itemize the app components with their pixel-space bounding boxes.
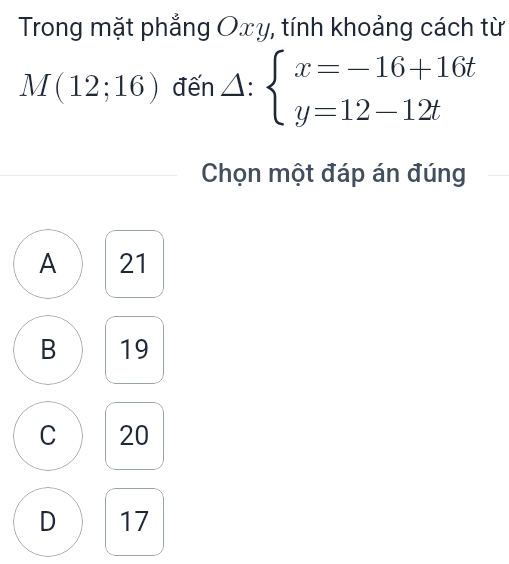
staticText: ;: [102, 70, 111, 102]
staticText: 20: [119, 420, 150, 452]
staticText: 16: [113, 70, 146, 102]
button[interactable]: Đáp án D: 17: [13, 487, 164, 557]
staticText: D: [39, 506, 57, 538]
staticText: 𝑂𝑥𝑦: [216, 12, 270, 42]
staticText: 17: [119, 506, 150, 538]
button[interactable]: 20: [105, 402, 164, 470]
button[interactable]: Đáp án A: 21: [13, 229, 164, 299]
button[interactable]: Đáp án C: 20: [13, 401, 164, 471]
staticText: =: [313, 94, 338, 126]
staticText: 21: [119, 248, 150, 280]
staticText: +: [408, 51, 433, 83]
staticText: 12: [68, 70, 101, 102]
staticText: , tính khoảng cách từ: [270, 12, 505, 42]
button[interactable]: C: [13, 401, 83, 471]
staticText: đến: [172, 72, 215, 102]
staticText: =: [316, 51, 341, 83]
staticText: C: [39, 420, 57, 452]
staticText: −: [374, 94, 399, 126]
staticText: (: [53, 70, 66, 102]
button[interactable]: A: [13, 229, 83, 299]
button[interactable]: D: [13, 487, 83, 557]
button[interactable]: 17: [105, 488, 164, 556]
staticText: A: [39, 248, 57, 280]
staticText: 16: [374, 51, 407, 83]
staticText: :: [246, 70, 255, 102]
staticText: 𝑡: [465, 51, 477, 83]
staticText: Trong mặt phẳng: [18, 12, 211, 42]
staticText: Chọn một đáp án đúng: [201, 158, 467, 188]
staticText: 𝛥: [219, 70, 246, 102]
staticText: 16: [435, 51, 468, 83]
staticText: 𝑡: [430, 94, 442, 126]
staticText: 𝑀: [18, 70, 50, 102]
staticText: 19: [119, 334, 150, 366]
staticText: B: [40, 334, 57, 366]
staticText: ): [148, 70, 161, 102]
staticText: −: [346, 51, 371, 83]
button[interactable]: Đáp án B: 19: [13, 315, 164, 385]
staticText: 12: [401, 94, 434, 126]
button[interactable]: B: [13, 315, 83, 385]
staticText: 12: [339, 94, 372, 126]
button[interactable]: 19: [105, 316, 164, 384]
staticText: 𝑦: [294, 94, 310, 126]
button[interactable]: 21: [105, 230, 164, 298]
staticText: 𝑥: [294, 51, 313, 83]
